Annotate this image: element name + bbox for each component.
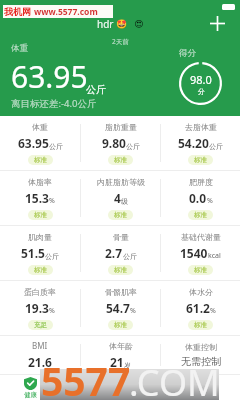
staticText: 分 [198,87,205,96]
staticText: 肌肉量 [28,232,52,242]
button[interactable]: 发现 [120,375,180,400]
staticText: 我机网 [4,6,31,17]
staticText: 21.6 [28,354,52,370]
button[interactable]: 测量 [60,375,120,400]
staticText: 标准 [194,266,207,274]
staticText: % [210,306,216,316]
staticText: 肥胖度 [189,177,213,187]
staticText: 标准 [34,156,47,164]
staticText: 51.5 [21,245,45,261]
staticText: 标准 [114,156,127,164]
staticText: 😍 [134,19,144,29]
staticText: 去脂体重 [185,122,217,132]
staticText: % [49,196,55,206]
staticText: 标准 [114,211,127,219]
staticText: 公斤 [126,142,140,151]
staticText: 体重 [32,122,48,132]
staticText: 2天前 [112,37,129,46]
staticText: 体水分 [189,287,213,297]
staticText: 标准 [34,211,47,219]
button[interactable]: 体年龄 [81,336,160,374]
staticText: 63.95 [11,56,88,97]
staticText: 9.80 [102,135,126,151]
staticText: 标准 [194,321,207,329]
staticText: BMI [32,340,48,351]
staticText: 发现 [144,391,157,399]
button[interactable]: 肥胖度 [161,171,240,225]
staticText: 离目标还差:-4.0公斤 [11,97,97,110]
staticText: % [49,306,55,316]
staticText: 标准 [194,156,207,164]
staticText: 54.7 [106,300,130,316]
staticText: 体重 [11,43,28,54]
staticText: 🤩 [116,19,128,30]
staticText: 公斤 [209,142,223,151]
staticText: 蛋白质率 [24,287,56,297]
staticText: 19.3 [25,300,49,316]
staticText: 体脂率 [28,177,52,187]
staticText: 4 [114,190,121,206]
staticText: 标准 [34,266,47,274]
staticText: % [207,196,213,206]
button[interactable]: 体重控制 [161,336,240,374]
staticText: 健康 [24,391,37,399]
staticText: 98.0 [190,72,212,87]
staticText: 63.95 [18,135,49,151]
staticText: 21 [110,354,124,370]
button[interactable]: 骨量 [81,226,160,280]
staticText: 54.20 [178,135,209,151]
staticText: 充足 [34,321,47,329]
staticText: 岁 [124,361,131,370]
staticText: 测量 [84,391,97,399]
staticText: 基础代谢量 [181,232,221,242]
staticText: 2.7 [105,245,123,261]
staticText: 内脏脂肪等级 [97,177,145,187]
staticText: 骨骼肌率 [105,287,137,297]
staticText: kcal [208,251,221,261]
button[interactable]: 内脏脂肪等级 [81,171,160,225]
staticText: 61.2 [186,300,210,316]
staticText: 公斤 [123,252,137,261]
button[interactable]: 健康 [0,375,60,400]
button[interactable]: 体重 [0,116,80,170]
staticText: 级 [121,197,128,206]
button[interactable]: 体脂率 [0,171,80,225]
staticText: 骨量 [113,232,129,242]
staticText: 我的 [204,391,217,399]
staticText: 0.0 [189,190,207,206]
staticText: 得分 [179,48,196,59]
staticText: 标准 [194,211,207,219]
staticText: 标准 [114,321,127,329]
staticText: 公斤 [49,142,63,151]
staticText: % [130,306,136,316]
button[interactable]: BMI [0,336,80,374]
button[interactable]: 基础代谢量 [161,226,240,280]
button[interactable]: 我的 [180,375,240,400]
staticText: 5:56 PM [5,2,34,12]
button[interactable]: 去脂体重 [161,116,240,170]
staticText: 公斤 [45,252,59,261]
staticText: .COM [129,358,220,400]
staticText: 无需控制 [181,355,221,368]
button[interactable]: 蛋白质率 [0,281,80,335]
staticText: 15.3 [25,190,49,206]
button[interactable]: Add record [204,10,230,36]
button[interactable]: 体水分 [161,281,240,335]
button[interactable]: 骨骼肌率 [81,281,160,335]
staticText: 体重控制 [185,342,217,352]
staticText: 公斤 [86,83,106,96]
staticText: 体年龄 [109,341,133,351]
staticText: 5577 [41,354,131,400]
staticText: 1540 [180,245,208,261]
staticText: hdr [97,17,114,31]
staticText: www.5577.com [34,6,98,18]
button[interactable]: 脂肪重量 [81,116,160,170]
button[interactable]: 肌肉量 [0,226,80,280]
staticText: 脂肪重量 [105,122,137,132]
staticText: 标准 [114,266,127,274]
